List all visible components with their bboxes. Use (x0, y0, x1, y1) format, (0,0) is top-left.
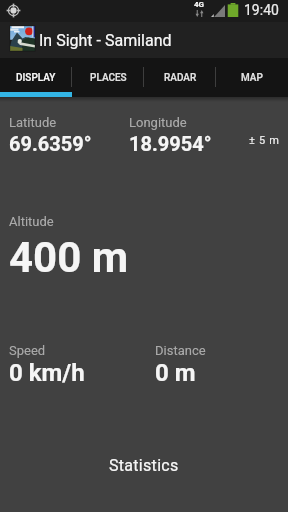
staticText: 18.9954° (129, 132, 212, 155)
staticText: Altitude (9, 214, 54, 229)
other: App icon (10, 26, 35, 51)
button[interactable]: Statistics (0, 445, 288, 485)
staticText: ± 5 m (249, 134, 280, 147)
staticText: Latitude (9, 115, 57, 130)
staticText: 19:40 (244, 2, 279, 18)
staticText: In Sight - Samiland (39, 31, 172, 50)
staticText: Distance (155, 343, 206, 358)
staticText: 0 m (155, 359, 196, 387)
button[interactable]: MAP (216, 58, 288, 97)
staticText: MAP (241, 72, 263, 84)
staticText: 0 km/h (9, 359, 85, 387)
staticText: DISPLAY (16, 72, 56, 84)
button[interactable]: PLACES (72, 58, 144, 97)
staticText: Statistics (109, 456, 179, 475)
staticText: Longitude (129, 115, 187, 130)
button[interactable]: RADAR (144, 58, 216, 97)
button[interactable]: App icon (0, 22, 288, 58)
staticText: PLACES (90, 72, 127, 84)
staticText: 400 m (9, 233, 129, 282)
staticText: RADAR (164, 72, 197, 84)
other: GPS active (6, 3, 21, 18)
staticText: 69.6359° (9, 132, 92, 155)
staticText: Speed (9, 343, 46, 358)
button[interactable]: DISPLAY (0, 58, 72, 97)
staticText: 4G (194, 0, 205, 9)
